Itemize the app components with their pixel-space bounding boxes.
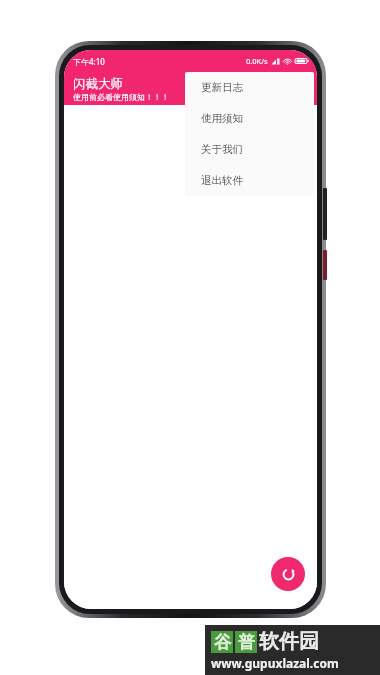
staticText: 关于我们 — [201, 143, 243, 156]
button[interactable]: 更新日志 — [185, 72, 314, 103]
staticText: www.gupuxlazal.com — [211, 655, 339, 671]
staticText: 软件园 — [259, 629, 319, 654]
staticText: 更新日志 — [201, 81, 243, 94]
button[interactable]: 退出软件 — [185, 165, 314, 196]
staticText: 闪截大师 — [73, 76, 123, 92]
staticText: 0.0K/s — [246, 56, 268, 66]
staticText: 谷 — [214, 632, 231, 653]
staticText: 退出软件 — [201, 174, 243, 187]
button[interactable]: Refresh — [271, 557, 305, 591]
staticText: 使用前必看使用须知！！！ — [73, 92, 169, 102]
staticText: 使用须知 — [201, 112, 243, 125]
staticText: 下午4:10 — [73, 56, 105, 67]
button[interactable]: 使用须知 — [185, 103, 314, 134]
button[interactable]: 关于我们 — [185, 134, 314, 165]
staticText: 普 — [238, 632, 255, 653]
